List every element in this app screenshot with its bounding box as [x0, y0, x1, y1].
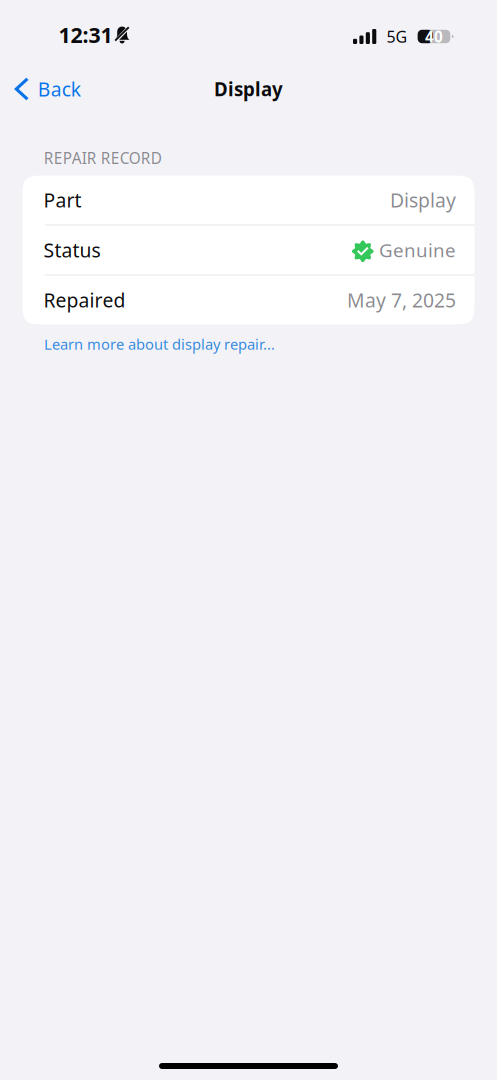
staticText: 40: [425, 26, 443, 47]
staticText: 5G: [386, 26, 407, 47]
staticText: REPAIR RECORD: [44, 147, 162, 168]
staticText: Back: [38, 76, 81, 102]
staticText: Learn more about display repair...: [44, 334, 275, 354]
staticText: Repaired: [43, 287, 125, 313]
button[interactable]: Repaired: [22, 275, 474, 324]
staticText: Display: [390, 187, 456, 213]
staticText: May 7, 2025: [347, 287, 456, 313]
button[interactable]: Part: [22, 175, 474, 224]
staticText: Status: [43, 237, 100, 263]
button[interactable]: Learn more about display repair...: [44, 335, 275, 353]
button[interactable]: Status: [22, 225, 474, 274]
button[interactable]: Back: [0, 67, 91, 111]
staticText: 12:31: [58, 20, 112, 49]
staticText: Display: [214, 76, 283, 102]
staticText: Part: [43, 187, 81, 213]
staticText: Genuine: [379, 237, 456, 263]
